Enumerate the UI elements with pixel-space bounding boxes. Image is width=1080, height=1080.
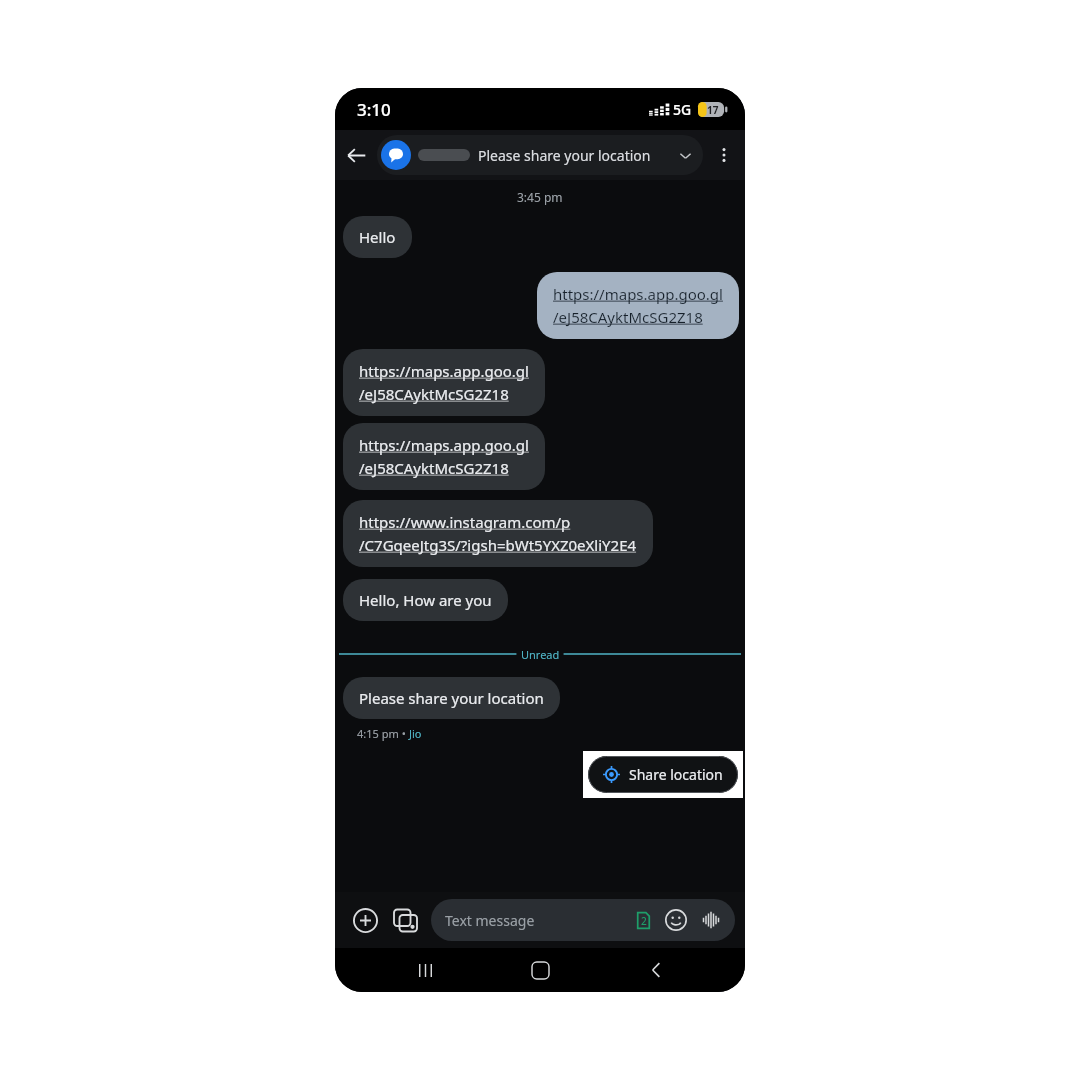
staticText: 2 xyxy=(641,914,647,928)
staticText: https://www.instagram.com/p xyxy=(359,512,571,532)
button[interactable]: https://maps.app.goo.gl xyxy=(343,349,545,416)
staticText: Share location xyxy=(629,765,723,784)
button[interactable]: Please share your location xyxy=(377,135,703,175)
button[interactable]: Share location xyxy=(588,756,738,793)
button[interactable]: Home xyxy=(514,948,566,992)
staticText: Jio xyxy=(409,726,422,741)
button[interactable]: Text message xyxy=(431,899,735,941)
staticText: Text message xyxy=(445,911,636,930)
staticText: Hello, How are you xyxy=(359,590,492,610)
button[interactable]: https://www.instagram.com/p xyxy=(343,500,653,567)
button[interactable]: https://maps.app.goo.gl xyxy=(537,272,739,339)
button[interactable]: Hello xyxy=(343,216,412,258)
staticText: /eJ58CAyktMcSG2Z18 xyxy=(359,384,509,404)
button[interactable]: More options xyxy=(703,134,745,176)
staticText: 3:45 pm xyxy=(517,189,563,205)
staticText: Hello xyxy=(359,227,396,247)
staticText: Please share your location xyxy=(478,146,674,165)
button[interactable]: Back xyxy=(335,134,377,176)
button[interactable]: Please share your location xyxy=(343,677,560,719)
button[interactable]: https://maps.app.goo.gl xyxy=(343,423,545,490)
button[interactable]: Gallery xyxy=(385,900,425,940)
staticText: https://maps.app.goo.gl xyxy=(359,361,529,381)
staticText: /C7GqeeJtg3S/?igsh=bWt5YXZ0eXliY2E4 xyxy=(359,535,637,555)
staticText: 4:15 pm xyxy=(357,726,399,741)
button[interactable]: Recent apps xyxy=(399,948,451,992)
staticText: 17 xyxy=(707,103,719,117)
staticText: Unread xyxy=(521,647,560,662)
staticText: 3:10 xyxy=(357,98,391,121)
button[interactable]: Add attachment xyxy=(345,900,385,940)
staticText: https://maps.app.goo.gl xyxy=(553,284,723,304)
staticText: Please share your location xyxy=(359,688,544,708)
staticText: /eJ58CAyktMcSG2Z18 xyxy=(553,307,703,327)
staticText: /eJ58CAyktMcSG2Z18 xyxy=(359,458,509,478)
button[interactable]: Hello, How are you xyxy=(343,579,508,621)
staticText: 5G xyxy=(673,100,692,119)
button[interactable]: Back xyxy=(630,948,682,992)
staticText: • xyxy=(399,726,409,741)
staticText: https://maps.app.goo.gl xyxy=(359,435,529,455)
